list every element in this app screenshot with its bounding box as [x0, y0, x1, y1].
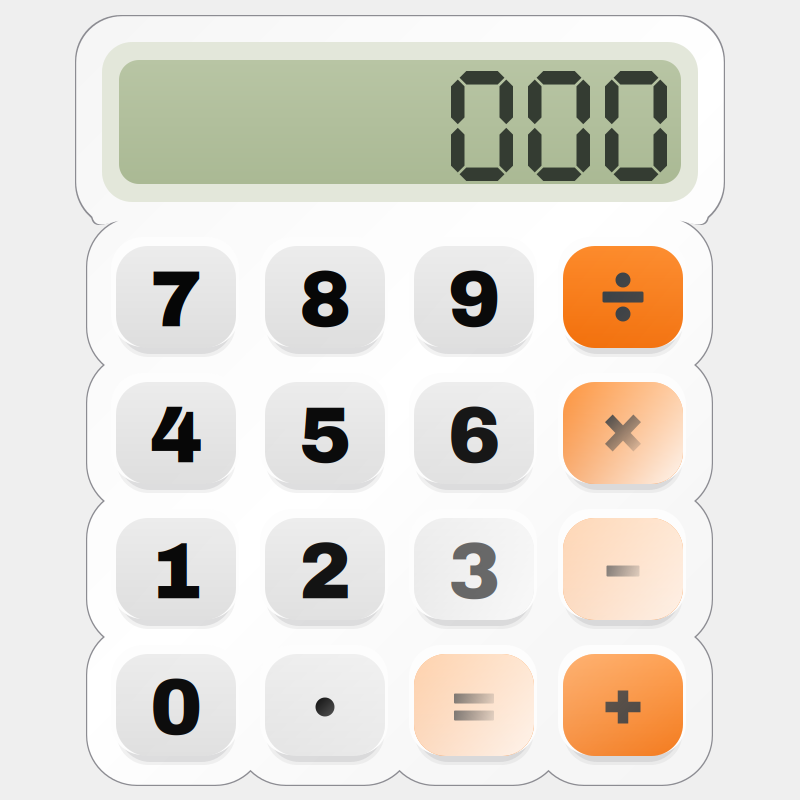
- button[interactable]: 1: [105, 507, 247, 631]
- staticText: 5: [299, 393, 351, 479]
- button[interactable]: 7: [105, 235, 247, 359]
- button[interactable]: Minus: [552, 507, 694, 631]
- staticText: 6: [448, 393, 500, 479]
- button[interactable]: 0: [105, 643, 247, 767]
- staticText: 9: [448, 257, 500, 343]
- staticText: 4: [150, 393, 202, 479]
- button[interactable]: Plus: [552, 643, 694, 767]
- staticText: 2: [299, 529, 351, 615]
- button[interactable]: Decimal point: [254, 643, 396, 767]
- staticText: 8: [299, 257, 351, 343]
- button[interactable]: 5: [254, 371, 396, 495]
- button[interactable]: 9: [403, 235, 545, 359]
- staticText: 3: [448, 529, 500, 615]
- button[interactable]: Multiply: [552, 371, 694, 495]
- button[interactable]: 2: [254, 507, 396, 631]
- button[interactable]: Divide: [552, 235, 694, 359]
- button[interactable]: Equals: [403, 643, 545, 767]
- staticText: 0: [150, 665, 202, 751]
- button[interactable]: 3: [403, 507, 545, 631]
- button[interactable]: 8: [254, 235, 396, 359]
- staticText: 1: [150, 529, 202, 615]
- button[interactable]: 4: [105, 371, 247, 495]
- button[interactable]: 6: [403, 371, 545, 495]
- staticText: 7: [150, 257, 202, 343]
